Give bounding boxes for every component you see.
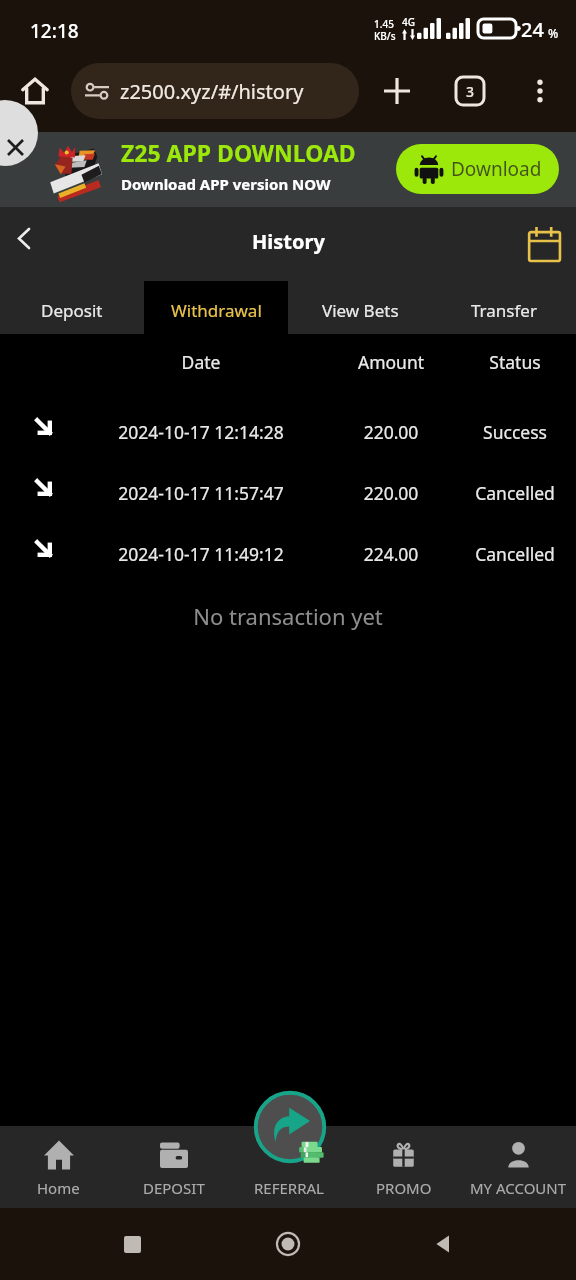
button[interactable]: z2500.xyz/#/history (71, 63, 359, 119)
button[interactable]: Home (264, 1220, 312, 1268)
button[interactable]: Download (396, 144, 559, 194)
button[interactable]: Referral (254, 1091, 334, 1171)
staticText: 220.00 (291, 481, 491, 505)
button[interactable]: MY ACCOUNT (461, 1126, 576, 1208)
staticText: 24 (521, 16, 544, 43)
button[interactable]: Withdrawal (144, 281, 288, 334)
staticText: 1.45 (374, 17, 394, 31)
button[interactable]: Back (420, 1220, 468, 1268)
button[interactable]: DEPOSIT (116, 1126, 231, 1208)
button[interactable]: Transfer (432, 281, 576, 334)
staticText: Amount (291, 350, 491, 374)
staticText: Home (37, 1178, 80, 1198)
staticText: Z25 APP DOWNLOAD (121, 137, 356, 168)
staticText: Status (415, 350, 576, 374)
button[interactable]: Home (13, 69, 57, 113)
button[interactable]: Deposit (0, 281, 144, 334)
staticText: Cancelled (415, 481, 576, 505)
button[interactable]: Calendar (516, 217, 570, 271)
staticText: % (548, 25, 559, 41)
staticText: MY ACCOUNT (470, 1178, 567, 1198)
staticText: History (252, 228, 325, 255)
staticText: 2024-10-17 12:14:28 (101, 420, 301, 444)
button[interactable]: New tab (375, 69, 419, 113)
staticText: 12:18 (30, 18, 79, 44)
button[interactable]: PROMO (346, 1126, 461, 1208)
button[interactable]: View Bets (288, 281, 432, 334)
staticText: DEPOSIT (143, 1178, 205, 1198)
button[interactable]: Recents (108, 1220, 156, 1268)
staticText: 4G (402, 15, 415, 29)
staticText: 3 (466, 82, 475, 101)
button[interactable]: REFERRAL (231, 1126, 346, 1208)
button[interactable]: 2024-10-17 11:49:12 (0, 521, 576, 582)
staticText: Cancelled (415, 542, 576, 566)
staticText: Transfer (471, 299, 537, 322)
staticText: z2500.xyz/#/history (120, 78, 304, 105)
button[interactable]: Home (0, 1126, 116, 1208)
staticText: Download (451, 156, 542, 182)
staticText: Withdrawal (171, 299, 262, 322)
staticText: KB/s (374, 29, 396, 43)
button[interactable]: More options (518, 69, 562, 113)
staticText: REFERRAL (254, 1178, 324, 1198)
staticText: 220.00 (291, 420, 491, 444)
staticText: 2024-10-17 11:57:47 (101, 481, 301, 505)
staticText: 224.00 (291, 542, 491, 566)
staticText: Deposit (41, 299, 103, 322)
staticText: PROMO (376, 1178, 432, 1198)
staticText: No transaction yet (0, 601, 576, 631)
button[interactable]: Tabs (448, 69, 492, 113)
staticText: 2024-10-17 11:49:12 (101, 542, 301, 566)
button[interactable]: Back (2, 216, 46, 260)
button[interactable]: 2024-10-17 11:57:47 (0, 460, 576, 521)
button[interactable]: 2024-10-17 12:14:28 (0, 399, 576, 460)
staticText: Download APP version NOW (121, 174, 331, 194)
staticText: Date (101, 350, 301, 374)
staticText: View Bets (322, 299, 399, 322)
button[interactable]: Close banner (0, 132, 38, 167)
staticText: Success (415, 420, 576, 444)
